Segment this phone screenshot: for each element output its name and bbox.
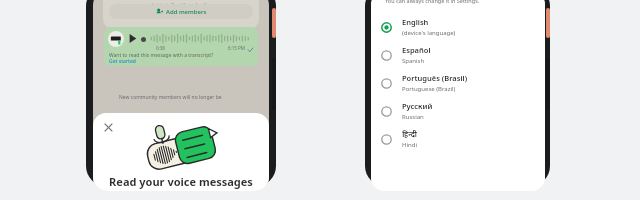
- staticText: English: [402, 17, 429, 27]
- staticText: Português (Brasil): [402, 73, 468, 83]
- staticText: Russian: [402, 113, 424, 121]
- button[interactable]: English: [371, 13, 545, 41]
- staticText: chat to talk with each other: [149, 2, 214, 9]
- staticText: Spanish: [402, 57, 425, 65]
- button[interactable]: Close: [101, 120, 115, 134]
- staticText: You can always change it in Settings.: [385, 0, 480, 4]
- staticText: Hindi: [402, 141, 417, 149]
- button[interactable]: Português (Brasil): [371, 69, 545, 97]
- staticText: New community members will no longer be: [119, 94, 222, 101]
- button[interactable]: Русский: [371, 97, 545, 125]
- staticText: 0:38: [156, 45, 165, 51]
- staticText: Read your voice messages: [109, 174, 253, 189]
- staticText: Add members: [166, 8, 207, 16]
- staticText: Want to read this message with a transcr…: [109, 52, 214, 59]
- staticText: Русский: [402, 101, 433, 111]
- staticText: Portuguese (Brazil): [402, 85, 456, 93]
- button[interactable]: Add members: [109, 4, 253, 19]
- staticText: Español: [402, 45, 431, 55]
- button[interactable]: Get started: [109, 58, 136, 65]
- staticText: (device's language): [402, 29, 456, 37]
- button[interactable]: हिन्दी: [371, 125, 545, 153]
- staticText: हिन्दी: [402, 129, 417, 139]
- staticText: 6:15 PM: [228, 45, 245, 51]
- button[interactable]: Español: [371, 41, 545, 69]
